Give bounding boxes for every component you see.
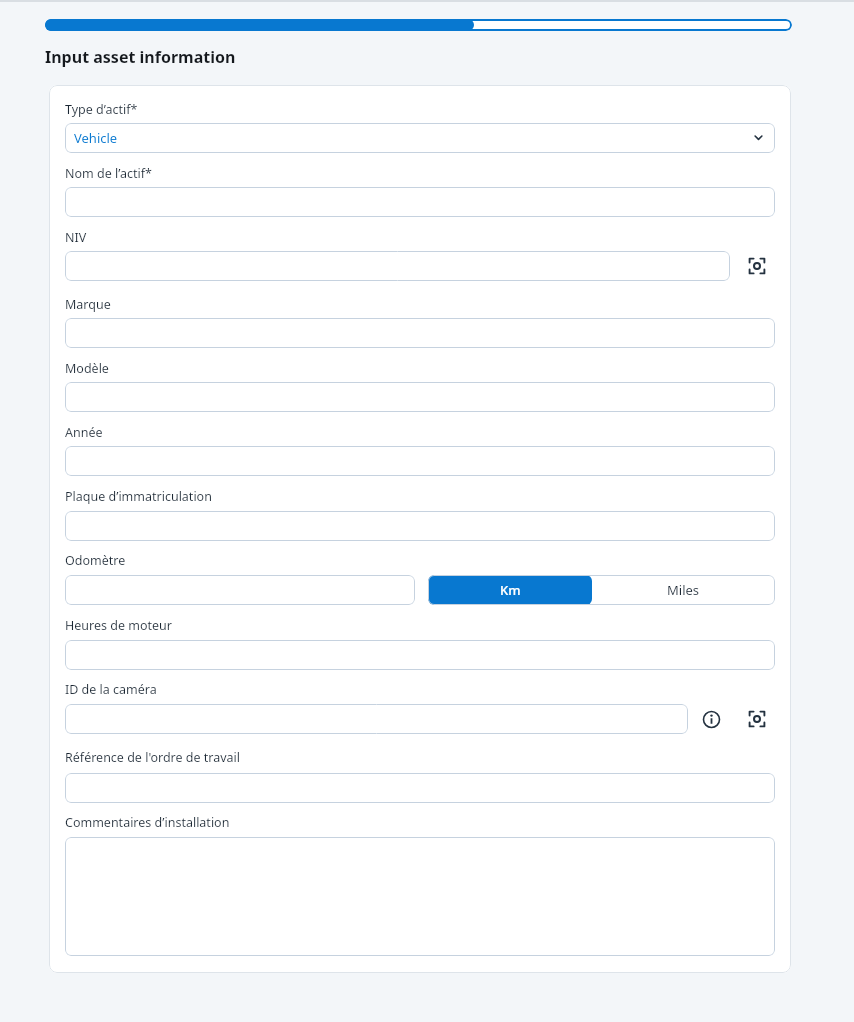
button[interactable] [748, 710, 766, 728]
staticText: Année [65, 424, 103, 441]
button[interactable] [65, 640, 775, 670]
button[interactable] [65, 511, 775, 541]
button[interactable] [65, 318, 775, 348]
staticText: ID de la caméra [65, 681, 157, 698]
button[interactable] [65, 575, 415, 605]
staticText: Commentaires d’installation [65, 814, 230, 831]
button[interactable] [702, 710, 721, 729]
staticText: Heures de moteur [65, 617, 172, 634]
staticText: Type d’actif* [65, 101, 138, 118]
staticText: Modèle [65, 360, 109, 377]
button[interactable]: Miles [592, 575, 775, 605]
staticText: Odomètre [65, 552, 126, 569]
staticText: Vehicle [74, 129, 118, 147]
button[interactable]: Km [428, 575, 592, 605]
staticText: Km [500, 581, 521, 599]
button[interactable] [65, 704, 688, 734]
button[interactable] [65, 837, 775, 956]
button[interactable] [65, 382, 775, 412]
button[interactable] [65, 187, 775, 217]
button[interactable] [65, 773, 775, 803]
button[interactable]: Vehicle [65, 123, 775, 153]
button[interactable] [65, 446, 775, 476]
staticText: Nom de l’actif* [65, 165, 152, 182]
staticText: Miles [667, 581, 700, 599]
button[interactable] [65, 251, 730, 281]
staticText: Plaque d’immatriculation [65, 488, 212, 505]
button[interactable] [748, 257, 766, 275]
staticText: Référence de l'ordre de travail [65, 749, 241, 766]
staticText: NIV [65, 229, 87, 246]
staticText: Input asset information [45, 46, 236, 68]
staticText: Marque [65, 296, 111, 313]
